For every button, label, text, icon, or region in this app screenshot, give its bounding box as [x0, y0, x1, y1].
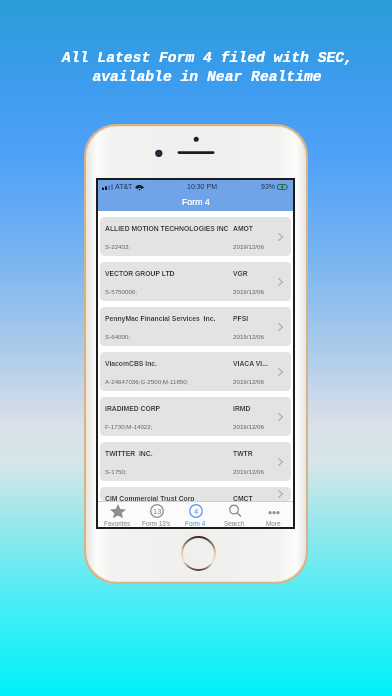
staticText: Favorites — [104, 520, 131, 527]
staticText: PennyMac Financial Services Inc. — [105, 315, 233, 323]
staticText: TWTR — [233, 450, 281, 458]
staticText: TWITTER INC. — [105, 450, 233, 458]
button[interactable]: Favorites — [98, 501, 137, 527]
staticText: F-1730;M-14022; — [105, 423, 233, 430]
staticText: ALLIED MOTION TECHNOLOGIES INC — [105, 225, 233, 233]
staticText: AMOT — [233, 225, 281, 233]
staticText: VECTOR GROUP LTD — [105, 270, 233, 278]
staticText: 2019/12/06 — [233, 333, 281, 340]
staticText: 2019/12/06 — [233, 243, 281, 250]
staticText: A-24647036;G-2500;M-11850; — [105, 378, 233, 385]
button[interactable]: TWITTER INC. — [100, 442, 291, 481]
staticText: CMCT — [233, 495, 281, 501]
button[interactable]: ALLIED MOTION TECHNOLOGIES INC — [100, 217, 291, 256]
button[interactable]: 4 — [176, 501, 215, 527]
staticText: 10:30 PM — [187, 183, 217, 191]
staticText: CIM Commercial Trust Corp — [105, 495, 233, 501]
staticText: More — [266, 520, 281, 527]
button[interactable]: Search — [215, 501, 254, 527]
staticText: Form 4 — [182, 197, 210, 207]
staticText: S-5750000; — [105, 288, 233, 295]
staticText: All Latest Form 4 filed with SEC, — [62, 50, 353, 67]
staticText: PFSI — [233, 315, 281, 323]
staticText: IRADIMED CORP — [105, 405, 233, 413]
staticText: VIACA VI... — [233, 360, 281, 368]
staticText: Form 4 — [185, 520, 206, 527]
button[interactable]: PennyMac Financial Services Inc. — [100, 307, 291, 346]
staticText: S-1750; — [105, 468, 233, 475]
staticText: 2019/12/06 — [233, 378, 281, 385]
staticText: VGR — [233, 270, 281, 278]
staticText: 2019/12/06 — [233, 423, 281, 430]
button[interactable]: ViacomCBS Inc. — [100, 352, 291, 391]
button[interactable]: CIM Commercial Trust Corp — [100, 487, 291, 501]
staticText: ViacomCBS Inc. — [105, 360, 233, 368]
staticText: Form 13's — [142, 520, 171, 527]
button[interactable]: IRADIMED CORP — [100, 397, 291, 436]
staticText: 4 — [194, 507, 199, 515]
staticText: AT&T — [115, 183, 133, 191]
staticText: Search — [224, 520, 245, 527]
staticText: available in Near Realtime — [92, 69, 322, 86]
staticText: S-22403; — [105, 243, 233, 250]
staticText: IRMD — [233, 405, 281, 413]
staticText: 13 — [153, 507, 162, 515]
staticText: 93% — [261, 183, 276, 191]
staticText: 2019/12/06 — [233, 288, 281, 295]
button[interactable]: VECTOR GROUP LTD — [100, 262, 291, 301]
staticText: 2019/12/06 — [233, 468, 281, 475]
button[interactable]: 13 — [137, 501, 176, 527]
staticText: S-64000; — [105, 333, 233, 340]
button[interactable]: More — [254, 501, 293, 527]
button[interactable]: Home — [181, 536, 216, 571]
